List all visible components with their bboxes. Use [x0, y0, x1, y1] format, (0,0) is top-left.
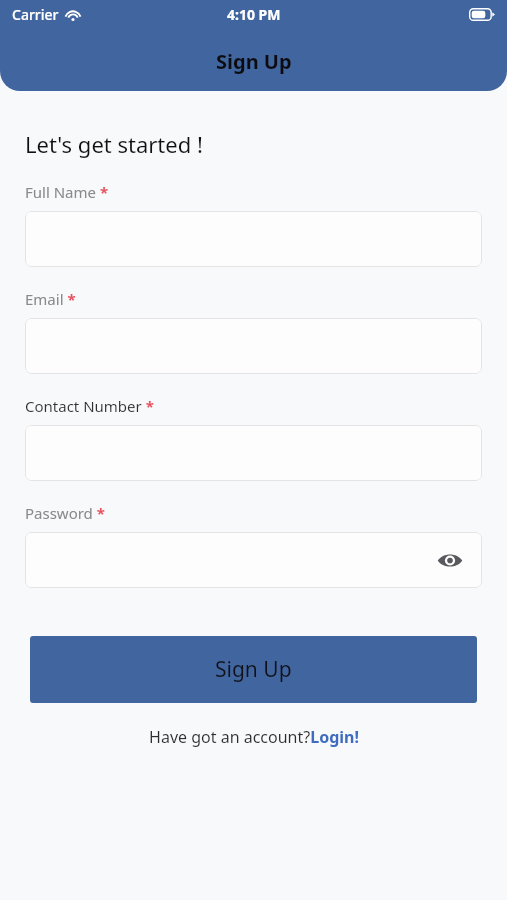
staticText: Sign Up: [215, 655, 292, 684]
button[interactable]: Show password: [432, 542, 468, 578]
staticText: Contact Number *: [25, 396, 154, 416]
button[interactable]: [25, 425, 482, 481]
button[interactable]: [25, 211, 482, 267]
staticText: Full Name *: [25, 182, 109, 202]
button[interactable]: Show password: [25, 532, 482, 588]
staticText: Email *: [25, 289, 76, 309]
staticText: Carrier: [12, 5, 59, 24]
button[interactable]: Have got an account?Login!: [149, 726, 359, 748]
staticText: Password *: [25, 503, 105, 523]
button[interactable]: Sign Up: [30, 636, 477, 703]
staticText: Have got an account?Login!: [149, 726, 359, 748]
staticText: Sign Up: [216, 48, 292, 75]
staticText: Let's get started !: [25, 129, 203, 159]
button[interactable]: [25, 318, 482, 374]
staticText: 4:10 PM: [227, 5, 281, 24]
